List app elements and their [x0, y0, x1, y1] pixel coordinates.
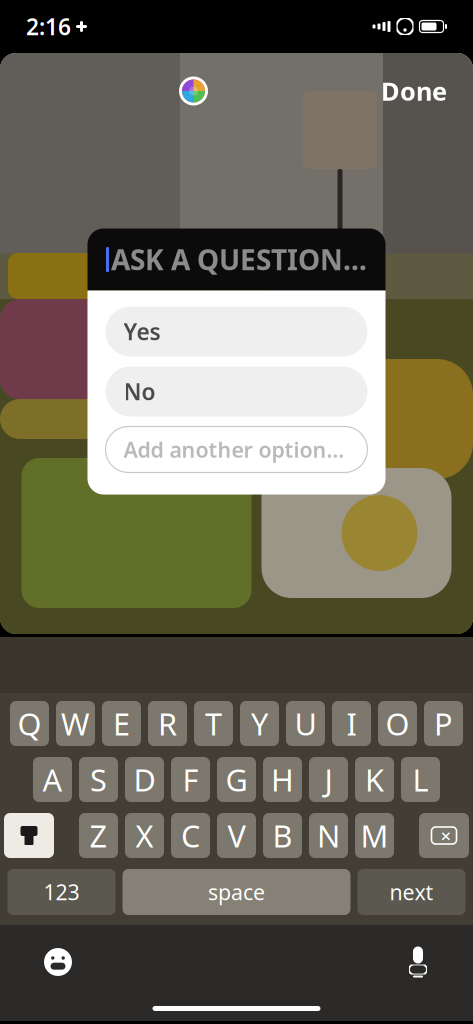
button[interactable]: D — [125, 757, 164, 802]
button[interactable]: P — [424, 701, 463, 746]
button[interactable]: N — [309, 813, 348, 858]
button[interactable]: I — [332, 701, 371, 746]
button[interactable]: E — [102, 701, 141, 746]
staticText: S — [90, 759, 107, 800]
staticText: M — [360, 815, 388, 856]
button[interactable]: Delete — [419, 813, 469, 858]
button[interactable]: V — [217, 813, 256, 858]
button[interactable]: T — [194, 701, 233, 746]
button[interactable]: Add another option… — [105, 426, 367, 472]
staticText: H — [271, 759, 294, 800]
button[interactable]: O — [378, 701, 417, 746]
staticText: 123 — [43, 878, 79, 906]
staticText: G — [225, 759, 247, 800]
button[interactable]: M — [355, 813, 394, 858]
staticText: X — [135, 815, 153, 856]
button[interactable]: next — [357, 869, 465, 915]
button[interactable]: Dictation — [397, 937, 439, 987]
staticText: B — [272, 815, 292, 856]
button[interactable]: K — [355, 757, 394, 802]
button[interactable]: 123 — [7, 869, 115, 915]
button[interactable]: G — [217, 757, 256, 802]
button[interactable]: C — [171, 813, 210, 858]
staticText: ASK A QUESTION… — [111, 241, 367, 278]
staticText: Done — [381, 74, 447, 108]
staticText: W — [61, 703, 90, 744]
staticText: × — [440, 823, 451, 848]
button[interactable]: Z — [79, 813, 118, 858]
button[interactable]: L — [401, 757, 440, 802]
staticText: U — [294, 703, 316, 744]
button[interactable]: X — [125, 813, 164, 858]
button[interactable]: U — [286, 701, 325, 746]
staticText: 2:16 — [26, 11, 71, 41]
staticText: N — [317, 815, 340, 856]
staticText: next — [389, 878, 433, 906]
staticText: R — [158, 703, 177, 744]
staticText: No — [123, 376, 155, 406]
button[interactable]: R — [148, 701, 187, 746]
button[interactable]: F — [171, 757, 210, 802]
staticText: Z — [89, 815, 107, 856]
staticText: Yes — [123, 316, 160, 346]
staticText: I — [346, 703, 356, 744]
button[interactable]: space — [122, 869, 350, 915]
staticText: J — [324, 759, 332, 800]
button[interactable]: No — [105, 366, 367, 416]
button[interactable]: W — [56, 701, 95, 746]
button[interactable]: H — [263, 757, 302, 802]
button[interactable]: S — [79, 757, 118, 802]
button[interactable]: Q — [10, 701, 49, 746]
button[interactable]: B — [263, 813, 302, 858]
staticText: Add another option… — [123, 435, 344, 464]
button[interactable]: Emoji — [34, 938, 82, 986]
staticText: Y — [251, 703, 268, 744]
button[interactable]: J — [309, 757, 348, 802]
button[interactable]: Yes — [105, 306, 367, 356]
staticText: E — [113, 703, 130, 744]
staticText: F — [182, 759, 198, 800]
button[interactable]: Text color — [171, 68, 216, 113]
button[interactable]: Done — [371, 66, 457, 116]
staticText: V — [227, 815, 245, 856]
staticText: A — [42, 759, 62, 800]
button[interactable]: A — [33, 757, 72, 802]
button[interactable]: Shift — [4, 813, 54, 858]
staticText: Q — [17, 703, 41, 744]
staticText: C — [181, 815, 200, 856]
button[interactable]: Y — [240, 701, 279, 746]
staticText: T — [205, 703, 222, 744]
staticText: D — [133, 759, 155, 800]
staticText: K — [365, 759, 384, 800]
staticText: P — [434, 703, 453, 744]
staticText: O — [385, 703, 409, 744]
staticText: space — [208, 878, 265, 906]
staticText: L — [412, 759, 428, 800]
